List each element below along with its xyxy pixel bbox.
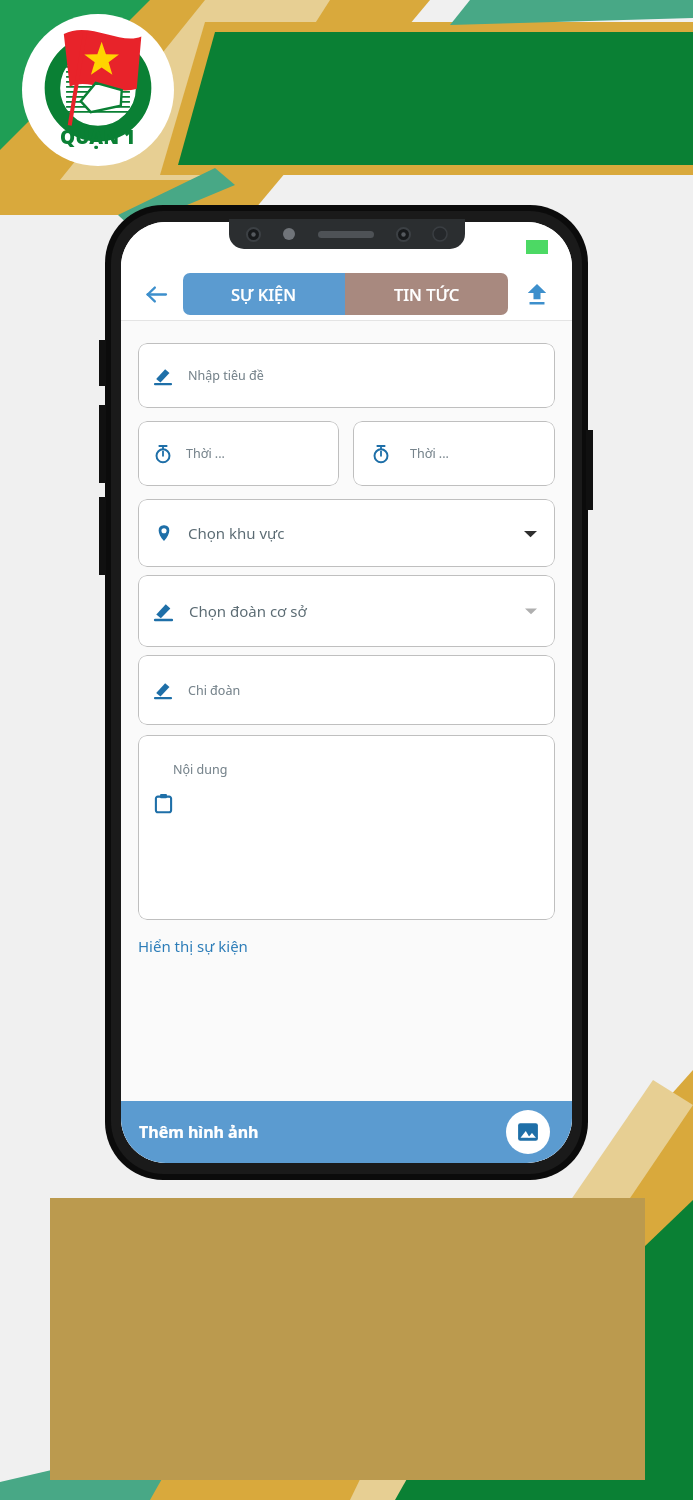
button[interactable]: SỰ KIỆN [183,273,345,315]
button[interactable]: Thời ... [138,421,339,486]
staticText: Nhập tiêu đề [188,367,264,384]
button[interactable]: Hiển thị sự kiện [138,936,555,956]
staticText: Hiển thị sự kiện [138,936,248,956]
button[interactable]: Back [135,273,177,315]
staticText: Thời ... [410,445,449,462]
button[interactable]: Nhập tiêu đề [138,343,555,408]
staticText: Thời ... [186,445,225,462]
button[interactable]: Thêm hình ảnh [121,1101,572,1163]
button[interactable]: Nội dung [138,735,555,920]
button[interactable]: TIN TỨC [345,273,508,315]
staticText: SỰ KIỆN [231,283,297,305]
staticText: Chi đoàn [188,682,241,699]
staticText: QUẬN 1 [60,124,136,150]
button[interactable]: Thời ... [353,421,555,486]
staticText: Nội dung [173,761,228,778]
button[interactable]: Add image [506,1110,550,1154]
staticText: Chọn khu vực [188,523,524,543]
button[interactable]: Chọn đoàn cơ sở [138,575,555,647]
button[interactable]: Chi đoàn [138,655,555,725]
staticText: Thêm hình ảnh [139,1121,259,1143]
button[interactable]: Upload [516,273,558,315]
staticText: Chọn đoàn cơ sở [189,601,525,621]
staticText: TIN TỨC [394,283,460,305]
button[interactable]: Chọn khu vực [138,499,555,567]
